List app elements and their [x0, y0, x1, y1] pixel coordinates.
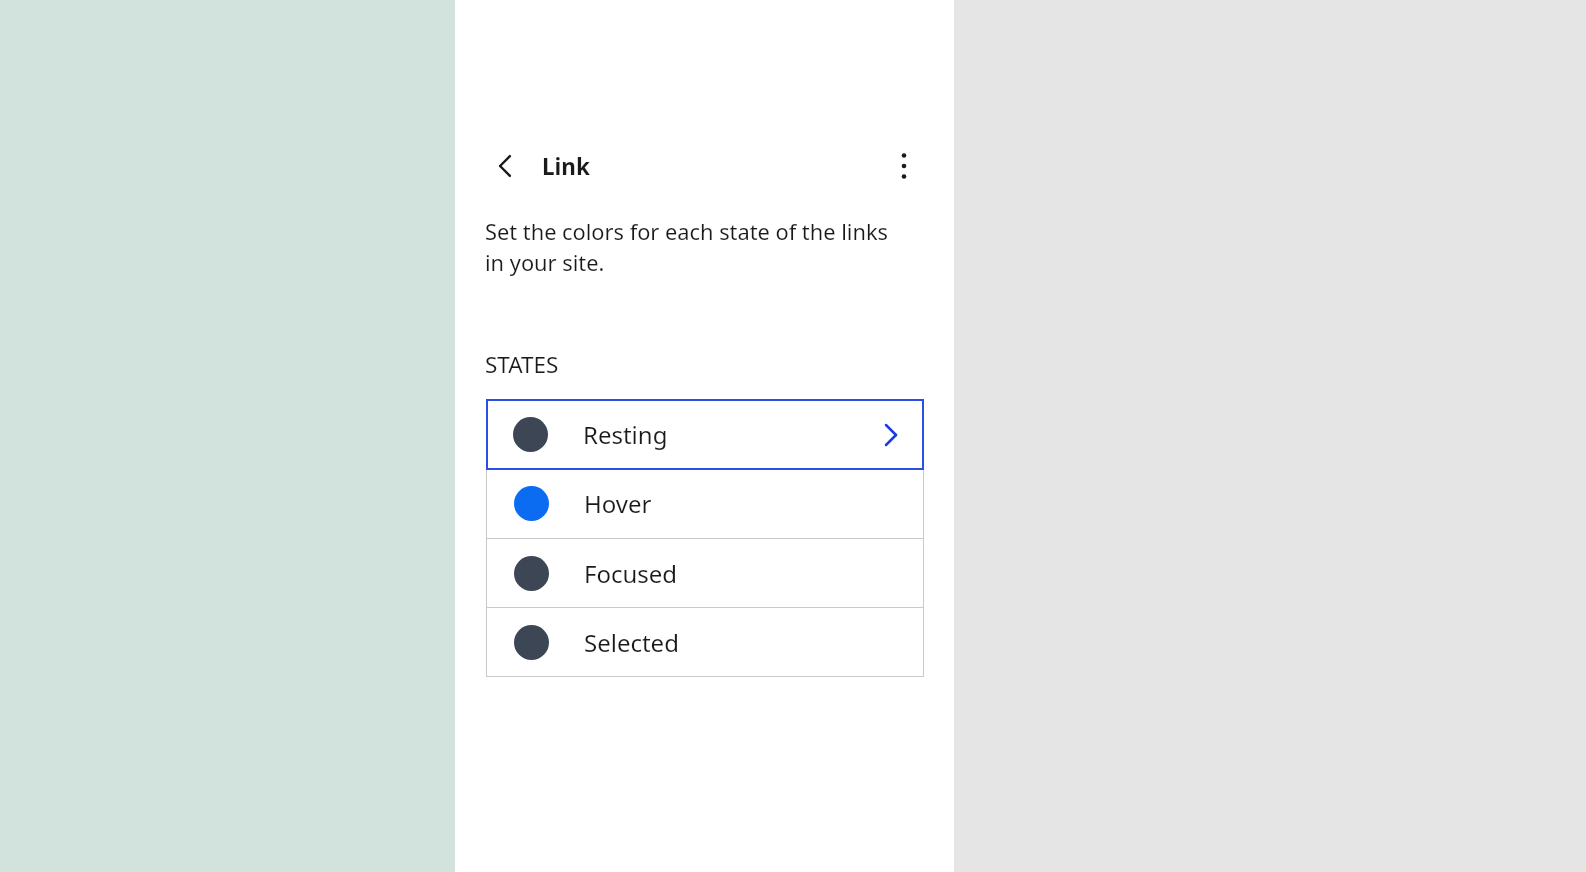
staticText: Selected	[584, 626, 679, 659]
staticText: Focused	[584, 557, 678, 590]
button[interactable]: Hover	[486, 469, 924, 538]
staticText: Resting	[583, 418, 668, 451]
staticText: STATES	[485, 349, 559, 380]
button[interactable]: More options	[886, 148, 922, 184]
button[interactable]: Selected	[486, 608, 924, 677]
button[interactable]: Focused	[486, 539, 924, 607]
staticText: Link	[542, 151, 590, 182]
staticText: Hover	[584, 487, 652, 520]
button[interactable]: Back	[487, 148, 523, 184]
staticText: Set the colors for each state of the lin…	[485, 217, 893, 277]
button[interactable]: Resting	[486, 399, 924, 470]
